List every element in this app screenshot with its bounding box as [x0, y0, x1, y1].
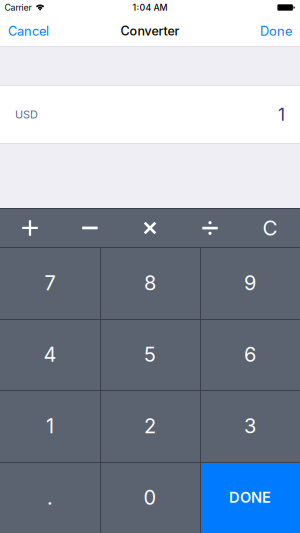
staticText: Cancel — [8, 23, 49, 39]
button[interactable]: Subtract — [60, 209, 120, 247]
staticText: 1:04 AM — [132, 2, 167, 13]
button[interactable]: 1 — [0, 390, 100, 462]
button[interactable]: Divide — [180, 209, 240, 247]
staticText: Done — [260, 23, 292, 39]
staticText: 1 — [278, 104, 285, 125]
button[interactable]: Cancel — [0, 16, 57, 46]
staticText: Converter — [120, 23, 179, 39]
staticText: 6 — [244, 342, 256, 367]
staticText: 3 — [244, 414, 256, 438]
button[interactable]: 7 — [0, 247, 100, 319]
staticText: 5 — [144, 342, 156, 367]
button[interactable]: Clear — [240, 209, 300, 247]
staticText: 1 — [46, 414, 54, 438]
button[interactable]: 0 — [100, 462, 200, 533]
button[interactable]: Done — [252, 16, 300, 46]
staticText: 2 — [144, 414, 156, 438]
staticText: USD — [15, 108, 38, 121]
button[interactable]: USD — [0, 86, 300, 143]
button[interactable]: 2 — [100, 390, 200, 462]
staticText: 7 — [44, 271, 55, 295]
staticText: 9 — [244, 271, 256, 295]
button[interactable]: . — [0, 462, 100, 533]
button[interactable]: 6 — [200, 319, 300, 390]
button[interactable]: Multiply — [120, 209, 180, 247]
button[interactable]: DONE — [200, 462, 300, 533]
staticText: Carrier — [5, 2, 32, 13]
staticText: C — [262, 216, 277, 240]
staticText: DONE — [229, 489, 271, 506]
button[interactable]: Add — [0, 209, 60, 247]
button[interactable]: 4 — [0, 319, 100, 390]
staticText: 8 — [144, 271, 156, 295]
button[interactable]: 5 — [100, 319, 200, 390]
staticText: . — [47, 485, 53, 510]
staticText: 0 — [143, 485, 156, 510]
button[interactable]: 3 — [200, 390, 300, 462]
button[interactable]: 9 — [200, 247, 300, 319]
staticText: 4 — [43, 342, 56, 367]
button[interactable]: 8 — [100, 247, 200, 319]
